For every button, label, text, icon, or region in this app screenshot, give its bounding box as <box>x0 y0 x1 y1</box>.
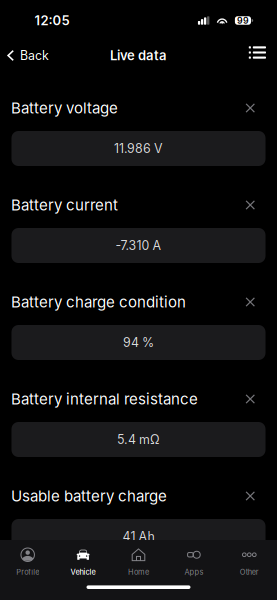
button[interactable]: Profile <box>0 540 55 580</box>
button[interactable]: Remove Battery voltage <box>236 97 264 119</box>
staticText: Live data <box>110 48 167 63</box>
button[interactable]: Home <box>111 540 166 580</box>
staticText: Profile <box>16 567 39 576</box>
button[interactable]: Remove Battery internal resistance <box>236 388 264 410</box>
staticText: Battery current <box>11 196 118 214</box>
staticText: Vehicle <box>71 567 96 576</box>
staticText: 5.4 mΩ <box>117 432 160 447</box>
staticText: 99 <box>237 15 249 26</box>
staticText: -7.310 A <box>115 238 161 253</box>
staticText: Usable battery charge <box>11 487 167 505</box>
button[interactable]: Remove Usable battery charge <box>236 485 264 507</box>
button[interactable]: Other <box>222 540 277 580</box>
staticText: Other <box>240 567 259 576</box>
staticText: Apps <box>184 567 203 576</box>
button[interactable]: Apps <box>166 540 222 580</box>
button[interactable]: Remove Battery current <box>236 194 264 216</box>
staticText: Battery voltage <box>11 99 118 117</box>
staticText: 41 Ah <box>122 529 154 544</box>
staticText: Battery internal resistance <box>11 390 198 408</box>
staticText: 11.986 V <box>114 141 163 156</box>
button[interactable]: Remove Battery charge condition <box>236 291 264 313</box>
staticText: 12:05 <box>34 13 69 28</box>
staticText: Battery charge condition <box>11 293 186 311</box>
button[interactable]: List view options <box>241 43 277 68</box>
button[interactable]: Back <box>0 43 55 68</box>
staticText: Home <box>128 567 149 576</box>
staticText: 94 % <box>123 335 154 350</box>
staticText: Back <box>20 48 49 63</box>
button[interactable]: Vehicle <box>55 540 111 580</box>
